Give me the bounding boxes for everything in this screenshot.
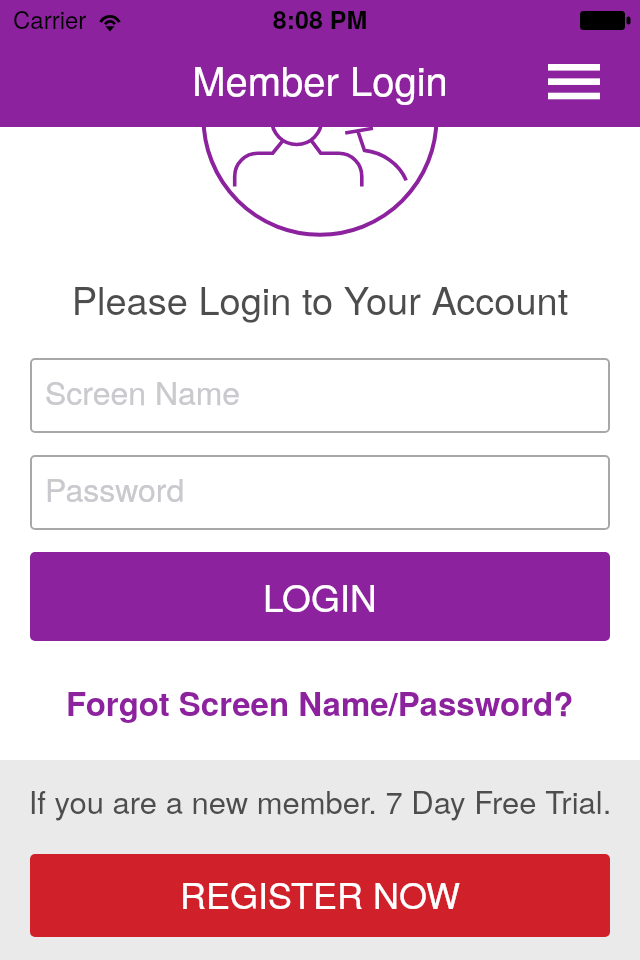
button[interactable]: LOGIN (30, 552, 610, 641)
button[interactable]: REGISTER NOW (30, 854, 610, 937)
staticText: REGISTER NOW (180, 868, 461, 920)
staticText: 8:08 PM (0, 1, 640, 37)
staticText: Please Login to Your Account (0, 271, 640, 325)
staticText: LOGIN (263, 570, 377, 623)
staticText: Screen Name (45, 368, 241, 414)
staticText: Forgot Screen Name/Password? (66, 679, 574, 726)
staticText: Password (45, 465, 185, 511)
button[interactable]: Screen Name (30, 358, 610, 433)
staticText: Carrier (13, 1, 87, 35)
button[interactable]: Open navigation menu (536, 52, 612, 112)
button[interactable]: Password (30, 455, 610, 530)
button[interactable]: Forgot Screen Name/Password? (0, 674, 640, 730)
staticText: If you are a new member. 7 Day Free Tria… (0, 778, 640, 822)
staticText: Member Login (0, 50, 640, 107)
